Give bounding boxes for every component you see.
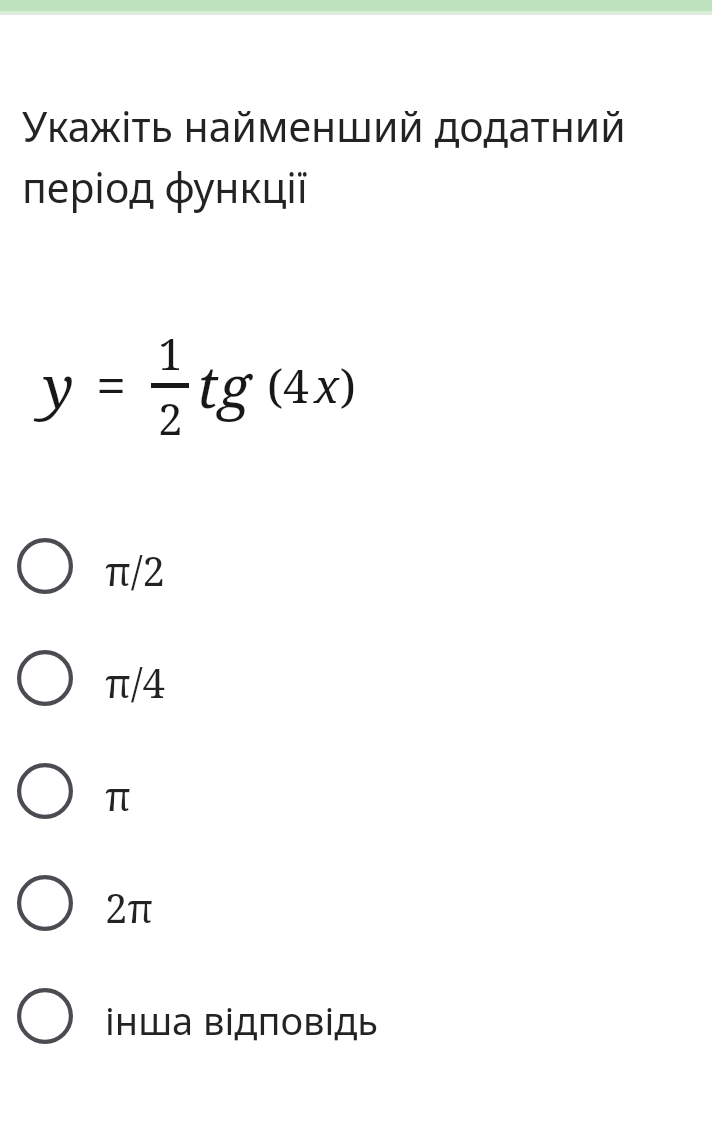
staticText: 1 (158, 323, 183, 383)
staticText: 2π (105, 880, 154, 934)
staticText: x (314, 354, 340, 417)
staticText: інша відповідь (105, 994, 379, 1046)
staticText: 2 (158, 388, 183, 448)
staticText: Укажіть найменший додатний період функці… (22, 98, 626, 215)
button[interactable]: π/4 (0, 639, 712, 752)
staticText: π/4 (105, 655, 165, 709)
button[interactable]: 2π (0, 864, 712, 977)
button[interactable]: π/2 (0, 527, 712, 639)
button[interactable]: інша відповідь (0, 977, 712, 1067)
staticText: y (43, 346, 74, 425)
staticText: tg (197, 346, 251, 425)
staticText: π (105, 768, 131, 822)
staticText: ) (340, 354, 356, 417)
staticText: π/2 (105, 543, 165, 597)
staticText: (4 (267, 354, 309, 417)
staticText: = (96, 348, 127, 422)
button[interactable]: π (0, 752, 712, 864)
